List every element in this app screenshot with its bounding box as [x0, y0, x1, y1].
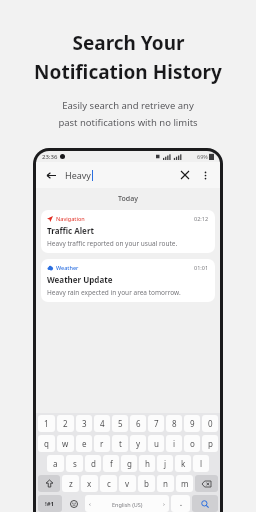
staticText: u	[154, 438, 159, 449]
staticText: h	[145, 458, 150, 469]
staticText: Navigation	[56, 215, 85, 222]
button[interactable]: 4	[94, 415, 110, 432]
button[interactable]: o	[184, 435, 200, 452]
staticText: a	[53, 458, 58, 469]
staticText: r	[100, 438, 104, 449]
button[interactable]: s	[66, 455, 83, 472]
staticText: 8	[172, 418, 177, 429]
button[interactable]: u	[148, 435, 164, 452]
button[interactable]: Weather	[41, 259, 215, 302]
staticText: !#1	[45, 500, 55, 508]
staticText: 2	[63, 418, 68, 429]
button[interactable]: ‹	[85, 495, 169, 512]
staticText: e	[82, 438, 87, 449]
staticText: 23:36	[42, 153, 58, 161]
staticText: 02:12	[194, 215, 209, 222]
button[interactable]: Back	[43, 167, 59, 183]
staticText: Heavy	[65, 169, 91, 181]
staticText: b	[144, 478, 149, 489]
button[interactable]: 1	[38, 415, 55, 432]
button[interactable]: p	[202, 435, 218, 452]
staticText: Notification History	[34, 59, 222, 85]
button[interactable]: 8	[166, 415, 182, 432]
button[interactable]: q	[38, 435, 55, 452]
button[interactable]: l	[193, 455, 209, 472]
staticText: Heavy rain expected in your area tomorro…	[47, 288, 181, 297]
button[interactable]: Clear	[177, 167, 193, 183]
staticText: 3	[82, 418, 87, 429]
staticText: j	[164, 458, 167, 469]
staticText: v	[125, 478, 130, 489]
button[interactable]: 2	[57, 415, 74, 432]
staticText: Heavy traffic reported on your usual rou…	[47, 239, 178, 248]
button[interactable]: j	[157, 455, 173, 472]
button[interactable]: g	[121, 455, 137, 472]
staticText: y	[136, 438, 141, 449]
button[interactable]: n	[157, 475, 174, 492]
button[interactable]: Emoji	[64, 495, 83, 512]
staticText: Weather	[56, 264, 79, 271]
staticText: l	[200, 458, 203, 469]
button[interactable]: t	[112, 435, 128, 452]
staticText: x	[87, 478, 92, 489]
staticText: q	[44, 438, 49, 449]
button[interactable]: v	[119, 475, 136, 492]
button[interactable]: Backspace	[195, 475, 218, 492]
button[interactable]: .	[171, 495, 190, 512]
button[interactable]: h	[139, 455, 155, 472]
staticText: Weather Update	[47, 274, 113, 285]
button[interactable]: 9	[184, 415, 200, 432]
button[interactable]: r	[94, 435, 110, 452]
button[interactable]: 7	[148, 415, 164, 432]
button[interactable]: i	[166, 435, 182, 452]
staticText: 7	[154, 418, 159, 429]
staticText: s	[73, 458, 77, 469]
button[interactable]: Navigation	[41, 210, 215, 253]
staticText: 9	[190, 418, 195, 429]
staticText: 5	[118, 418, 123, 429]
staticText: o	[190, 438, 195, 449]
staticText: z	[69, 478, 73, 489]
staticText: c	[107, 478, 111, 489]
button[interactable]: e	[76, 435, 92, 452]
button[interactable]: x	[81, 475, 98, 492]
button[interactable]: Search	[192, 495, 218, 512]
staticText: k	[181, 458, 186, 469]
staticText: 69%	[197, 153, 208, 160]
staticText: .	[180, 499, 182, 509]
button[interactable]: d	[85, 455, 101, 472]
staticText: t	[119, 438, 122, 449]
staticText: ‹	[89, 500, 91, 508]
staticText: i	[173, 438, 176, 449]
staticText: p	[208, 438, 213, 449]
button[interactable]: 3	[76, 415, 92, 432]
button[interactable]: c	[100, 475, 117, 492]
staticText: n	[163, 478, 168, 489]
button[interactable]: z	[62, 475, 79, 492]
button[interactable]: 0	[202, 415, 218, 432]
button[interactable]: 5	[112, 415, 128, 432]
button[interactable]: a	[47, 455, 64, 472]
staticText: 6	[136, 418, 141, 429]
staticText: Traffic Alert	[47, 225, 94, 236]
button[interactable]: Shift	[38, 475, 60, 492]
button[interactable]: More options	[197, 167, 213, 183]
staticText: English (US)	[112, 501, 143, 508]
staticText: ›	[163, 500, 165, 508]
staticText: Search Your	[72, 30, 185, 56]
staticText: Today	[36, 194, 220, 204]
button[interactable]: w	[57, 435, 74, 452]
button[interactable]: !#1	[38, 495, 62, 512]
button[interactable]: y	[130, 435, 146, 452]
staticText: g	[127, 458, 132, 469]
button[interactable]: f	[103, 455, 119, 472]
button[interactable]: 6	[130, 415, 146, 432]
staticText: d	[91, 458, 96, 469]
button[interactable]: k	[175, 455, 191, 472]
staticText: 01:01	[194, 264, 209, 271]
staticText: m	[181, 478, 189, 489]
button[interactable]: m	[176, 475, 193, 492]
button[interactable]: b	[138, 475, 155, 492]
staticText: 4	[100, 418, 105, 429]
staticText: w	[62, 438, 69, 449]
